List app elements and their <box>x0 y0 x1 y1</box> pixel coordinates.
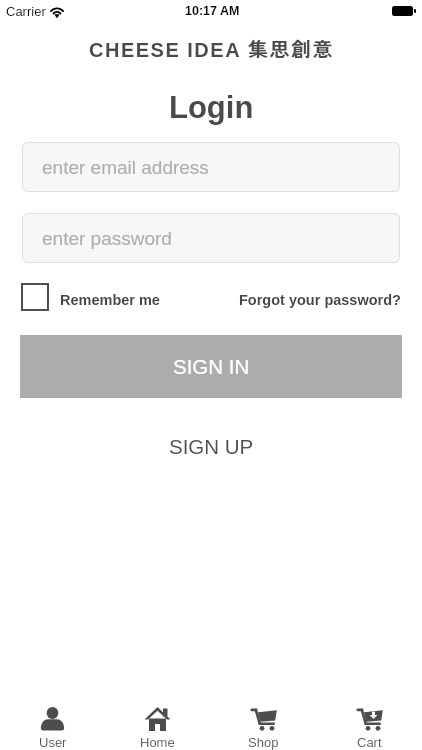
staticText: 10:17 AM <box>185 4 240 18</box>
staticText: SIGN UP <box>169 435 254 458</box>
staticText: Shop <box>248 735 279 750</box>
button[interactable]: SIGN UP <box>169 435 254 458</box>
button[interactable]: enter password <box>22 213 400 263</box>
staticText: enter password <box>42 228 172 249</box>
button[interactable]: Shop <box>210 700 316 750</box>
button[interactable]: User <box>0 700 105 750</box>
button[interactable]: Cart <box>316 700 422 750</box>
staticText: Login <box>169 90 254 125</box>
staticText: Carrier <box>6 4 46 19</box>
button[interactable]: enter email address <box>22 142 400 192</box>
button[interactable]: SIGN IN <box>20 335 402 398</box>
staticText: SIGN IN <box>173 355 250 378</box>
staticText: 集思創意 <box>248 34 334 59</box>
staticText: CHEESE IDEA <box>89 39 242 61</box>
staticText: User <box>39 735 67 750</box>
staticText: Remember me <box>60 292 160 308</box>
staticText: Home <box>140 735 175 750</box>
button[interactable]: Forgot your password? <box>239 289 401 305</box>
button[interactable]: Remember me <box>21 283 160 311</box>
staticText: Forgot your password? <box>239 292 401 308</box>
staticText: Cart <box>357 735 382 750</box>
button[interactable]: Home <box>105 700 210 750</box>
staticText: enter email address <box>42 157 209 178</box>
